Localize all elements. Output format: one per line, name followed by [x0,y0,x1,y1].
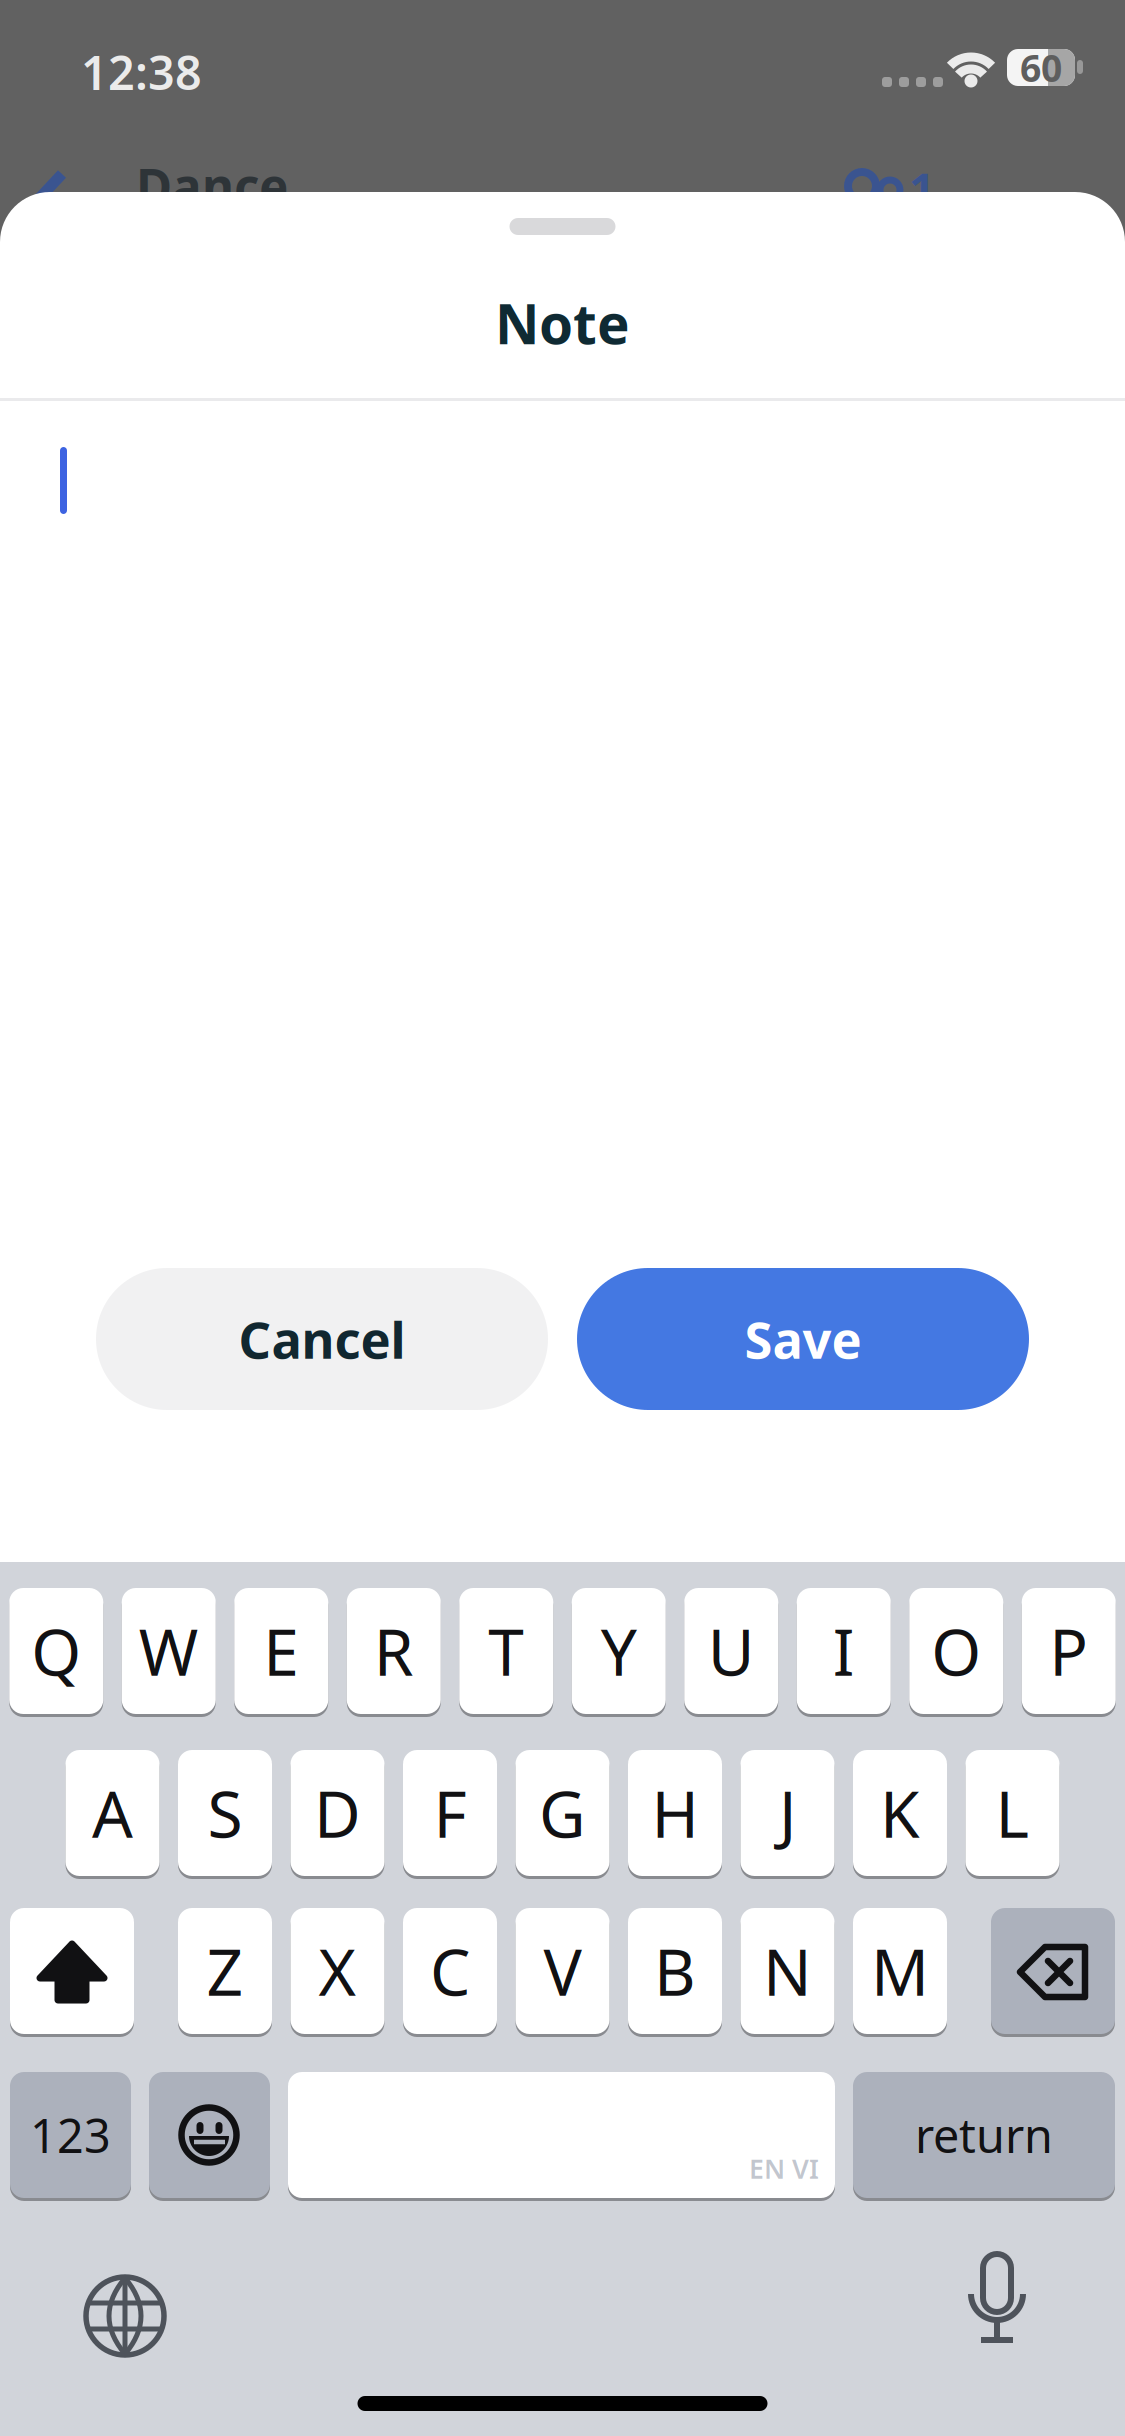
staticText: V [543,1928,581,2013]
staticText: X [318,1928,356,2013]
staticText: B [654,1928,696,2013]
button[interactable]: J [740,1750,834,1876]
staticText: N [763,1928,812,2013]
staticText: S [207,1770,242,1855]
staticText: W [139,1608,199,1693]
button[interactable]: return [853,2072,1115,2198]
button[interactable]: 123 [10,2072,131,2198]
staticText: Y [601,1608,637,1693]
button[interactable]: B [628,1908,722,2034]
staticText: Cancel [238,1305,405,1373]
button[interactable]: T [459,1588,553,1714]
button[interactable]: F [403,1750,497,1876]
staticText: A [92,1770,133,1855]
button[interactable]: I [797,1588,891,1714]
button[interactable]: Save [577,1268,1029,1410]
staticText: 12:38 [81,41,202,103]
button[interactable]: W [122,1588,216,1714]
staticText: Z [206,1928,243,2013]
button[interactable]: N [740,1908,834,2034]
button[interactable]: space [288,2072,835,2198]
staticText: 123 [30,2104,111,2166]
staticText: Save [744,1305,861,1373]
button[interactable]: D [290,1750,384,1876]
staticText: G [539,1770,586,1855]
button[interactable]: Q [9,1588,103,1714]
button[interactable]: Cancel [96,1268,548,1410]
staticText: J [779,1770,796,1855]
staticText: U [708,1608,755,1693]
button[interactable]: C [403,1908,497,2034]
button[interactable]: X [290,1908,384,2034]
button[interactable]: V [515,1908,609,2034]
button[interactable]: R [347,1588,441,1714]
button[interactable]: delete [991,1908,1115,2034]
staticText: return [915,2104,1053,2166]
button[interactable]: E [234,1588,328,1714]
button[interactable]: P [1022,1588,1116,1714]
button[interactable]: Y [572,1588,666,1714]
button[interactable]: O [909,1588,1003,1714]
button[interactable]: Dictation [965,2260,1029,2360]
staticText: R [374,1608,414,1693]
staticText: EN VI [749,2151,819,2186]
staticText: O [931,1608,981,1693]
button[interactable]: G [515,1750,609,1876]
staticText: I [833,1608,855,1693]
staticText: C [430,1928,470,2013]
staticText: E [263,1608,299,1693]
staticText: L [995,1770,1029,1855]
staticText: K [880,1770,920,1855]
button[interactable]: M [853,1908,947,2034]
button[interactable]: S [178,1750,272,1876]
staticText: T [488,1608,524,1693]
staticText: Note [495,287,630,359]
button[interactable]: Next keyboard [82,2267,168,2353]
button[interactable]: U [684,1588,778,1714]
staticText: Dance [136,153,288,218]
staticText: F [433,1770,466,1855]
button[interactable]: A [65,1750,159,1876]
staticText: 1 [909,158,935,218]
staticText: Q [31,1608,81,1693]
button[interactable]: Z [178,1908,272,2034]
staticText: 60 [1020,43,1062,92]
staticText: M [871,1928,929,2013]
button[interactable]: emoji [149,2072,270,2198]
staticText: P [1049,1608,1088,1693]
button[interactable]: shift [10,1908,134,2034]
button[interactable]: L [965,1750,1059,1876]
staticText: H [651,1770,698,1855]
button[interactable]: H [628,1750,722,1876]
staticText: D [314,1770,361,1855]
button[interactable]: K [853,1750,947,1876]
